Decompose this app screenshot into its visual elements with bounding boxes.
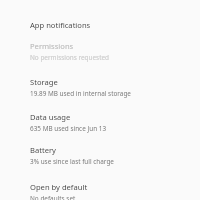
staticText: 3% use since last full charge — [30, 157, 114, 166]
button[interactable]: Data usage — [0, 109, 200, 143]
staticText: Open by default — [30, 182, 88, 192]
staticText: Storage — [30, 77, 58, 87]
button: Permissions — [0, 38, 200, 72]
staticText: Data usage — [30, 112, 71, 122]
staticText: Battery — [30, 145, 56, 155]
staticText: App notifications — [30, 20, 91, 30]
staticText: 635 MB used since Jun 13 — [30, 124, 107, 133]
button[interactable]: Storage — [0, 74, 200, 108]
button[interactable]: App notifications — [0, 7, 200, 38]
staticText: 19.89 MB used in internal storage — [30, 89, 131, 98]
staticText: No permissions requested — [30, 53, 109, 62]
staticText: No defaults set — [30, 194, 76, 200]
staticText: Permissions — [30, 41, 74, 51]
button[interactable]: Battery — [0, 143, 200, 177]
button[interactable]: Open by default — [0, 179, 200, 200]
